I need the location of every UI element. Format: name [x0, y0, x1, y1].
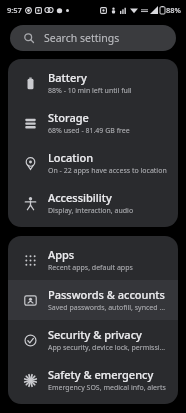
staticText: 88% - 10 min left until full: [48, 86, 132, 96]
button[interactable]: Battery: [8, 63, 178, 103]
button[interactable]: Location: [8, 143, 178, 183]
staticText: Security & privacy: [48, 327, 142, 342]
staticText: Battery: [48, 70, 87, 85]
staticText: Display, interaction, audio: [48, 206, 134, 216]
button[interactable]: Accessibility: [8, 183, 178, 223]
button[interactable]: Passwords & accounts: [8, 280, 178, 320]
staticText: Accessibility: [48, 190, 112, 205]
staticText: Location: [48, 150, 94, 165]
button[interactable]: Storage: [8, 103, 178, 143]
button[interactable]: Safety & emergency: [8, 360, 178, 400]
staticText: App security, device lock, permissions: [48, 343, 168, 353]
staticText: Emergency SOS, medical info, alerts: [48, 383, 166, 393]
staticText: 9:57: [7, 5, 22, 15]
staticText: On - 22 apps have access to location: [48, 166, 167, 176]
staticText: Safety & emergency: [48, 367, 154, 382]
button[interactable]: Search settings: [10, 25, 176, 51]
staticText: Saved passwords, autofill, synced accoun…: [48, 303, 168, 313]
staticText: Apps: [48, 247, 75, 262]
staticText: Search settings: [44, 31, 120, 45]
staticText: Passwords & accounts: [48, 287, 165, 302]
button[interactable]: Security & privacy: [8, 320, 178, 360]
button[interactable]: Apps: [8, 240, 178, 280]
staticText: Storage: [48, 110, 89, 125]
staticText: 68% used - 81.49 GB free: [48, 126, 130, 136]
staticText: Recent apps, default apps: [48, 263, 133, 273]
staticText: 88%: [166, 5, 181, 15]
